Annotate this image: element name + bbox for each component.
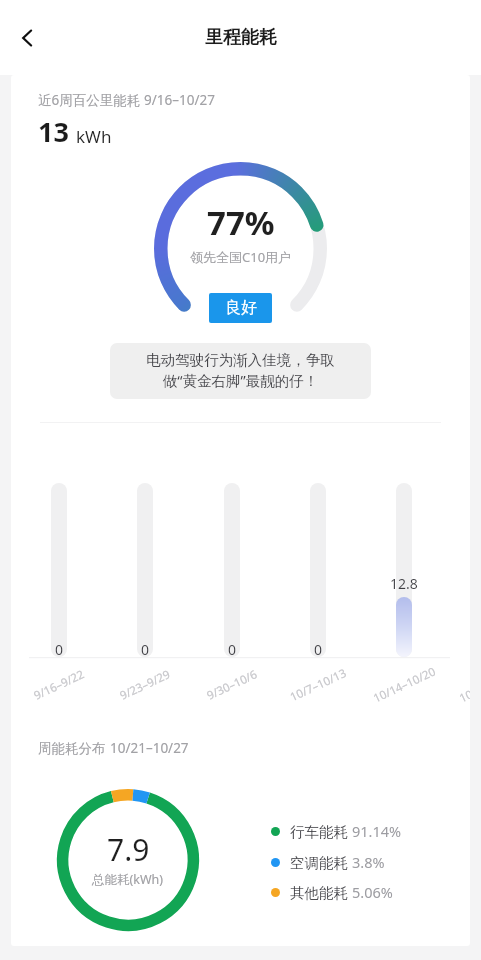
staticText: 77% <box>207 200 275 245</box>
staticText: 9/30–10/6 <box>204 666 260 704</box>
staticText: 0 <box>314 640 323 659</box>
staticText: 电动驾驶行为渐入佳境，争取 做“黄金右脚”最靓的仔！ <box>146 351 335 391</box>
staticText: 周能耗分布 <box>38 739 110 757</box>
staticText: 10/21–10/27 <box>110 739 189 757</box>
staticText: 91.14% <box>352 821 402 841</box>
button[interactable]: 良好 <box>209 293 272 323</box>
staticText: 12.8 <box>390 574 418 593</box>
staticText: 空调能耗 <box>290 852 352 872</box>
staticText: 10/14–10/20 <box>371 664 438 706</box>
staticText: 10/7–10/13 <box>287 665 349 705</box>
staticText: 13 <box>38 113 69 150</box>
staticText: 总能耗(kWh) <box>92 871 164 888</box>
button[interactable]: 行车能耗 <box>271 819 402 843</box>
staticText: 里程能耗 <box>205 26 277 49</box>
button[interactable]: 空调能耗 <box>271 850 385 874</box>
staticText: 7.9 <box>107 829 150 870</box>
staticText: 10/21–10/27 <box>457 664 470 706</box>
staticText: 良好 <box>225 298 257 318</box>
staticText: 9/16–9/22 <box>31 666 87 704</box>
staticText: 5.06% <box>352 882 393 902</box>
staticText: 9/16–10/27 <box>144 91 215 109</box>
staticText: 3.8% <box>352 852 385 872</box>
staticText: 0 <box>228 640 237 659</box>
button[interactable]: Back <box>5 15 51 61</box>
staticText: 其他能耗 <box>290 882 352 902</box>
staticText: 0 <box>141 640 150 659</box>
staticText: kWh <box>76 125 112 148</box>
staticText: 行车能耗 <box>290 821 352 841</box>
button[interactable]: 其他能耗 <box>271 880 393 904</box>
staticText: 0 <box>55 640 64 659</box>
staticText: 9/23–9/29 <box>117 666 173 704</box>
staticText: 近6周百公里能耗 <box>38 91 144 109</box>
staticText: 领先全国C10用户 <box>190 248 292 266</box>
